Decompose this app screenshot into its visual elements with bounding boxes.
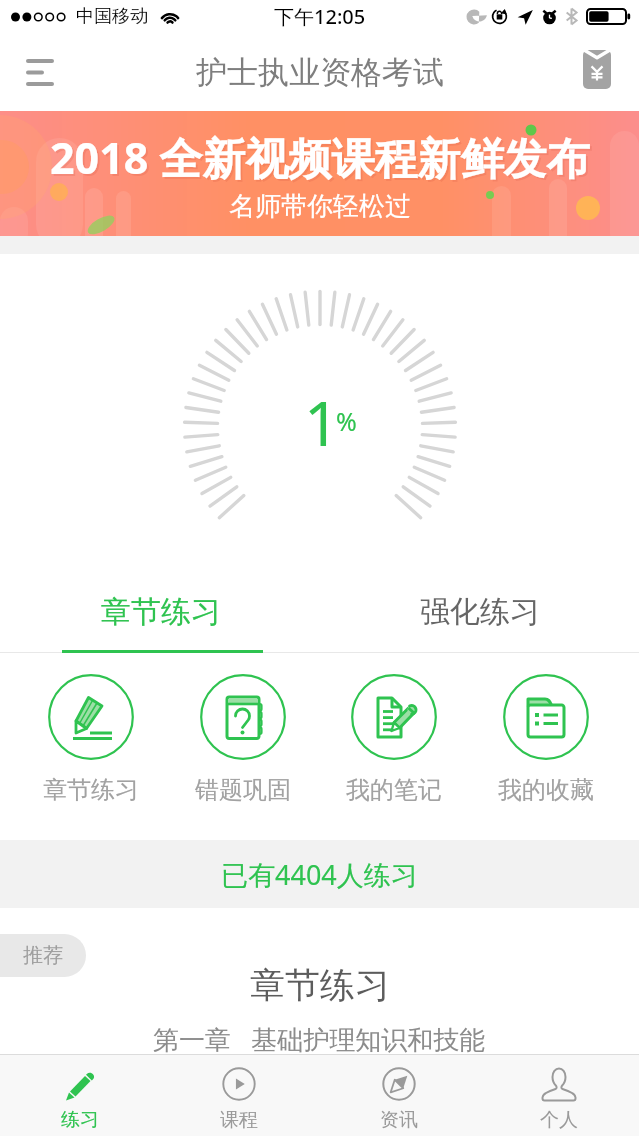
staticText: 章节练习: [43, 775, 139, 805]
staticText: 名师带你轻松过: [229, 190, 411, 223]
button[interactable]: 章节练习: [0, 570, 320, 653]
staticText: %: [336, 404, 357, 438]
button[interactable]: 我的收藏: [470, 674, 622, 805]
staticText: 练习: [61, 1108, 99, 1132]
staticText: 强化练习: [420, 593, 540, 631]
staticText: 1: [304, 380, 340, 464]
button[interactable]: 2018 全新视频课程新鲜发布: [0, 111, 639, 236]
staticText: 推荐: [23, 943, 63, 968]
button[interactable]: Red packet: [568, 43, 626, 101]
button[interactable]: 我的笔记: [318, 674, 470, 805]
button[interactable]: 个人: [479, 1055, 639, 1136]
staticText: 章节练习: [250, 963, 390, 1007]
staticText: 中国移动: [76, 5, 148, 28]
staticText: 个人: [540, 1108, 578, 1132]
staticText: 下午12:05: [274, 3, 366, 30]
button[interactable]: Menu: [11, 43, 69, 101]
staticText: 错题巩固: [195, 775, 291, 805]
button[interactable]: 资讯: [319, 1055, 479, 1136]
staticText: 第一章 基础护理知识和技能: [153, 1021, 486, 1054]
staticText: 已有4404人练习: [221, 856, 418, 893]
button[interactable]: 练习: [0, 1055, 159, 1136]
button[interactable]: 强化练习: [320, 570, 639, 653]
staticText: 资讯: [380, 1108, 418, 1132]
button[interactable]: 章节练习: [15, 674, 167, 805]
staticText: 章节练习: [101, 593, 221, 631]
staticText: 我的收藏: [498, 775, 594, 805]
button[interactable]: 课程: [159, 1055, 319, 1136]
staticText: 2018 全新视频课程新鲜发布: [52, 130, 592, 189]
staticText: 课程: [220, 1108, 258, 1132]
staticText: 2018 全新视频课程新鲜发布: [50, 128, 590, 187]
button[interactable]: 错题巩固: [167, 674, 319, 805]
staticText: 护士执业资格考试: [196, 53, 444, 92]
staticText: 我的笔记: [346, 775, 442, 805]
button[interactable]: 推荐: [0, 934, 86, 977]
